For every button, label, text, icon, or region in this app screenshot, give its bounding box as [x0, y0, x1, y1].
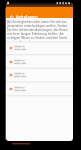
button[interactable]	[6, 42, 73, 55]
button[interactable]	[6, 83, 73, 96]
button[interactable]: Astrologen	[6, 7, 73, 18]
button[interactable]	[6, 69, 73, 82]
staticText: Bei Streitigkeiten oder wenn Sie sich be…	[7, 20, 71, 41]
button[interactable]	[6, 56, 73, 69]
staticText: Astrologen	[16, 14, 38, 20]
